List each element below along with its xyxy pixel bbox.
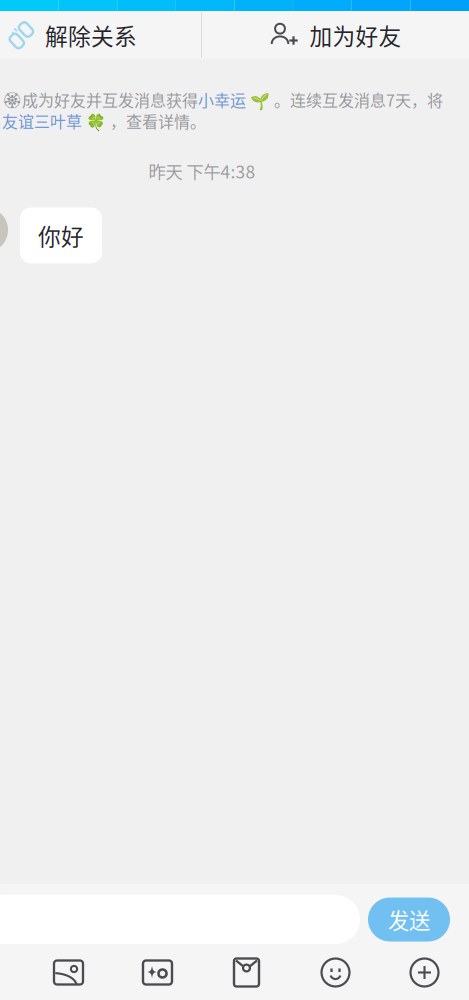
staticText: 加为好友 [309, 19, 401, 51]
staticText: 🌱 [246, 88, 274, 111]
button[interactable]: 解除关系 [0, 11, 201, 59]
staticText: 小幸运 [198, 88, 246, 111]
staticText: 🏵成为好友并互发消息获得 [2, 88, 198, 111]
button[interactable]: Photos [24, 950, 113, 995]
staticText: 🍀 [82, 109, 110, 132]
button[interactable]: Stickers [113, 950, 202, 995]
staticText: 。连续互发消息7天，将 [274, 88, 443, 111]
staticText: 你好 [38, 219, 84, 252]
button[interactable]: More [380, 950, 469, 995]
staticText: 解除关系 [45, 19, 137, 51]
button[interactable]: 发送 [368, 897, 450, 941]
staticText: 发送 [388, 904, 430, 935]
button[interactable]: Emoji [291, 950, 380, 995]
staticText: 友谊三叶草 [2, 109, 82, 132]
staticText: 昨天 下午4:38 [148, 158, 255, 183]
button[interactable]: Red packet [202, 950, 291, 995]
button[interactable]: 加为好友 [202, 11, 469, 59]
staticText: ，查看详情。 [110, 109, 206, 132]
